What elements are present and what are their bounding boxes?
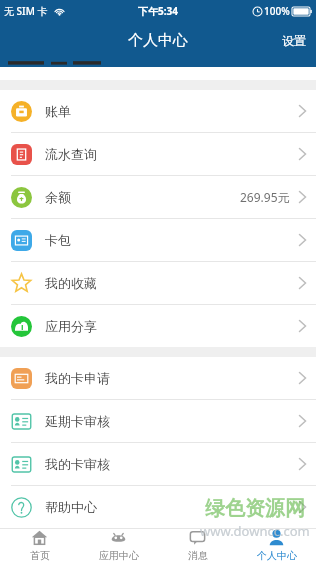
staticText: 个人中心	[128, 31, 188, 50]
button[interactable]: 延期卡审核	[0, 400, 316, 443]
button[interactable]: 应用分享	[0, 305, 316, 347]
button[interactable]: 帮助中心	[0, 486, 316, 528]
staticText: 我的卡申请	[45, 370, 110, 386]
staticText: 首页	[30, 549, 50, 562]
button[interactable]: 应用中心	[79, 529, 158, 562]
button[interactable]: 账单	[0, 90, 316, 133]
button[interactable]: 设置	[272, 25, 316, 56]
button[interactable]: 我的卡申请	[0, 357, 316, 400]
staticText: 账单	[45, 103, 71, 119]
staticText: 帮助中心	[45, 499, 97, 515]
staticText: 卡包	[45, 232, 71, 248]
staticText: 应用中心	[99, 549, 139, 562]
button[interactable]: 流水查询	[0, 133, 316, 176]
button[interactable]: 我的卡审核	[0, 443, 316, 486]
button[interactable]: 首页	[0, 529, 79, 562]
staticText: 下午5:34	[138, 4, 178, 18]
staticText: 消息	[188, 549, 208, 562]
button[interactable]: 消息	[158, 529, 237, 562]
staticText: 269.95元	[240, 189, 290, 205]
button[interactable]: 余额	[0, 176, 316, 219]
staticText: 延期卡审核	[45, 413, 110, 429]
button[interactable]: 我的收藏	[0, 262, 316, 305]
staticText: 我的卡审核	[45, 456, 110, 472]
staticText: 设置	[282, 33, 306, 48]
staticText: 应用分享	[45, 318, 97, 334]
staticText: 余额	[45, 189, 71, 205]
button[interactable]: 卡包	[0, 219, 316, 262]
staticText: 无 SIM 卡	[4, 4, 48, 18]
staticText: 100%	[264, 4, 290, 18]
staticText: 我的收藏	[45, 275, 97, 291]
staticText: 绿色资源网	[205, 496, 305, 521]
staticText: www.downcc.com	[200, 522, 310, 540]
staticText: 个人中心	[257, 549, 297, 562]
staticText: 流水查询	[45, 146, 97, 162]
button[interactable]: 个人中心	[237, 529, 316, 562]
